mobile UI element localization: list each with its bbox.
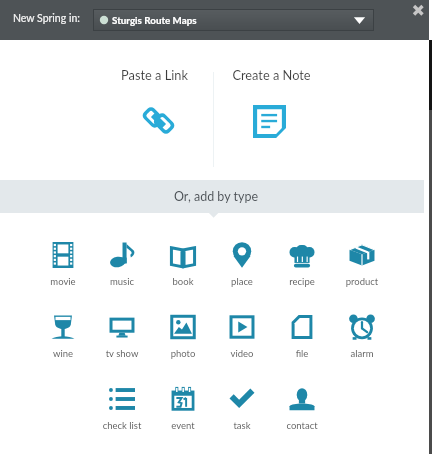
staticText: music [93,276,151,287]
button[interactable]: wine [34,308,92,360]
button[interactable]: movie [34,236,92,288]
staticText: book [154,276,212,287]
staticText: Paste a Link [93,67,216,82]
staticText: product [333,276,391,287]
button[interactable]: tv show [93,308,151,360]
staticText: place [213,276,271,287]
staticText: event [154,420,212,431]
button[interactable]: music [93,236,151,288]
staticText: Create a Note [214,67,329,82]
staticText: check list [93,420,151,431]
button[interactable]: book [154,236,212,288]
button[interactable]: Close dialog [410,2,426,18]
staticText: Sturgis Route Maps [112,14,197,26]
button[interactable]: task [213,380,271,432]
staticText: file [273,348,331,359]
staticText: alarm [333,348,391,359]
staticText: task [213,420,271,431]
button[interactable]: photo [154,308,212,360]
staticText: New Spring in: [13,12,80,25]
staticText: photo [154,348,212,359]
button[interactable]: file [273,308,331,360]
button[interactable]: event [154,380,212,432]
button[interactable]: alarm [333,308,391,360]
staticText: movie [34,276,92,287]
button[interactable]: product [333,236,391,288]
staticText: recipe [273,276,331,287]
staticText: wine [34,348,92,359]
button[interactable]: recipe [273,236,331,288]
button[interactable]: Sturgis Route Maps [93,9,374,31]
staticText: Or, add by type [0,189,432,204]
button[interactable]: check list [93,380,151,432]
button[interactable]: Paste a Link [93,62,216,157]
button[interactable]: Create a Note [214,62,329,157]
button[interactable]: video [213,308,271,360]
button[interactable]: contact [273,380,331,432]
staticText: contact [273,420,331,431]
staticText: tv show [93,348,151,359]
staticText: video [213,348,271,359]
button[interactable]: place [213,236,271,288]
